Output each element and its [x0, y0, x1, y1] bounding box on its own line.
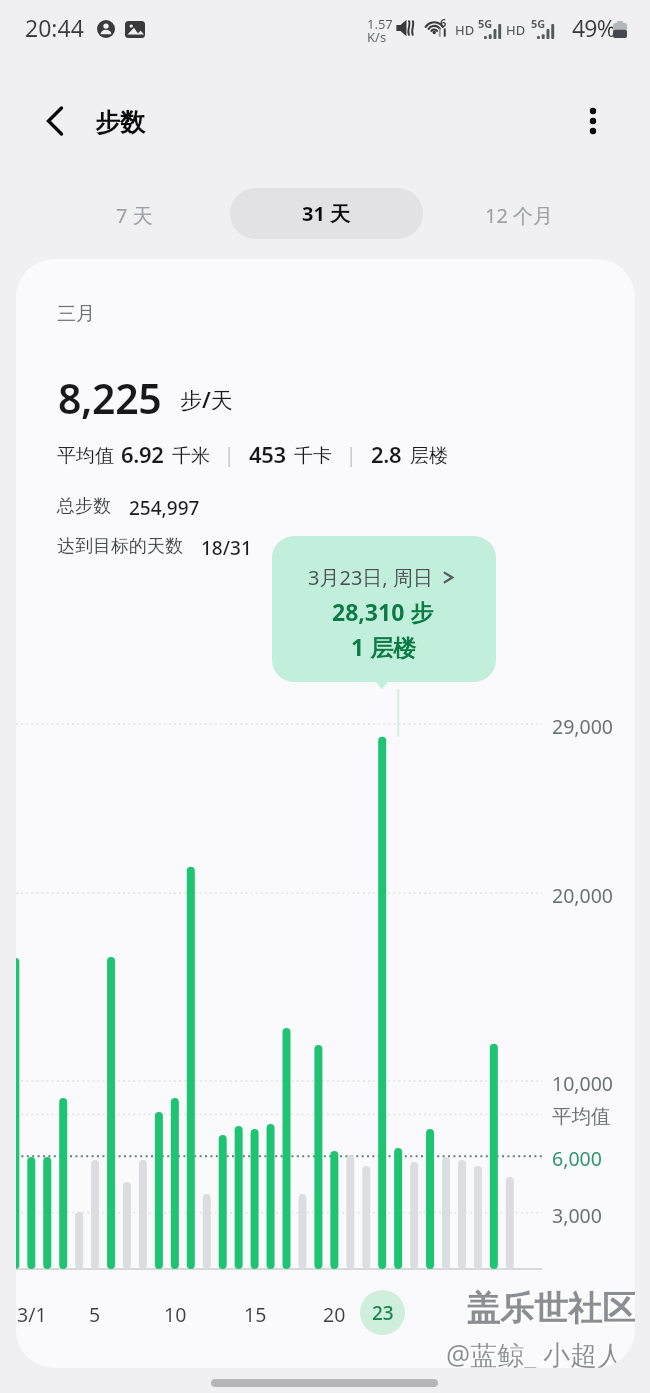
staticText: 3,000 [552, 1202, 602, 1229]
staticText: 盖乐世社区 [466, 1287, 635, 1330]
staticText: 盖乐世社区 [468, 1289, 635, 1332]
staticText: 6.92 [121, 439, 164, 469]
button[interactable]: Back [34, 100, 76, 142]
staticText: 3/1 [17, 1301, 47, 1328]
staticText: HD [506, 21, 526, 39]
staticText: 6 [440, 15, 447, 30]
staticText: 层楼 [410, 444, 448, 468]
button[interactable]: 3月23日, 周日 [272, 536, 496, 682]
staticText: 10,000 [552, 1070, 613, 1097]
staticText: | [224, 442, 235, 468]
staticText: 总步数 [57, 495, 111, 518]
staticText: 达到目标的天数 [57, 535, 183, 558]
staticText: 20 [323, 1301, 346, 1328]
staticText: 49% [572, 12, 616, 43]
staticText: 平均值 [552, 1104, 611, 1129]
staticText: 千米 [172, 444, 210, 468]
staticText: HD [455, 21, 475, 39]
staticText: 千卡 [294, 444, 332, 468]
staticText: K/s [367, 28, 387, 46]
staticText: 5 [89, 1301, 101, 1328]
staticText: 29,000 [552, 713, 613, 740]
button[interactable]: 12 个月 [445, 189, 593, 241]
staticText: 步数 [95, 107, 145, 138]
staticText: @蓝鲸_ 小超人 [446, 1336, 625, 1368]
staticText: 1 层楼 [351, 631, 417, 662]
staticText: 28,310 步 [332, 596, 434, 627]
staticText: 12 个月 [485, 202, 554, 229]
staticText: @蓝鲸_ 小超人 [448, 1338, 627, 1368]
staticText: 3月23日, 周日 [308, 564, 433, 591]
button[interactable]: More options [571, 99, 615, 143]
staticText: 1.57 [367, 15, 393, 33]
staticText: 步/天 [180, 384, 233, 414]
staticText: 20,000 [552, 882, 613, 909]
button[interactable]: 7 天 [60, 189, 208, 241]
staticText: 5G [478, 16, 493, 31]
staticText: 453 [249, 439, 286, 469]
staticText: 20:44 [25, 12, 84, 43]
staticText: 7 天 [116, 202, 153, 229]
staticText: 2.8 [371, 439, 402, 469]
staticText: 23 [372, 1300, 394, 1326]
staticText: 8,225 [58, 370, 162, 426]
button[interactable]: 23 [360, 1290, 405, 1335]
staticText: 三月 [57, 302, 95, 326]
staticText: 5G [531, 16, 546, 31]
staticText: | [346, 442, 357, 468]
staticText: 6,000 [552, 1145, 602, 1172]
staticText: 254,997 [129, 495, 200, 521]
staticText: 10 [164, 1301, 187, 1328]
staticText: 31 天 [302, 200, 351, 227]
button[interactable]: 31 天 [230, 188, 423, 239]
staticText: 18/31 [201, 535, 252, 561]
staticText: 平均值 [57, 444, 114, 468]
staticText: 15 [244, 1301, 267, 1328]
